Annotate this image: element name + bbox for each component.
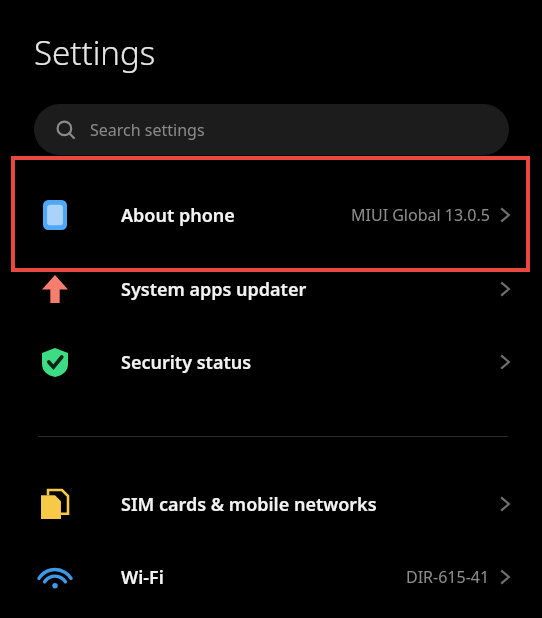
staticText: About phone [121,203,235,228]
staticText: Settings [34,30,156,75]
staticText: MIUI Global 13.0.5 [351,204,490,226]
staticText: System apps updater [121,277,307,302]
button[interactable]: System apps updater [0,262,542,316]
button[interactable]: Search settings [34,104,509,155]
staticText: SIM cards & mobile networks [121,492,377,517]
button[interactable]: Wi-Fi [0,550,542,604]
staticText: Search settings [90,119,205,141]
button[interactable]: SIM cards & mobile networks [0,477,542,531]
staticText: DIR-615-41 [406,566,490,588]
button[interactable]: Security status [0,335,542,389]
staticText: Security status [121,350,252,375]
button[interactable]: About phone [0,188,542,242]
staticText: Wi-Fi [121,565,164,590]
